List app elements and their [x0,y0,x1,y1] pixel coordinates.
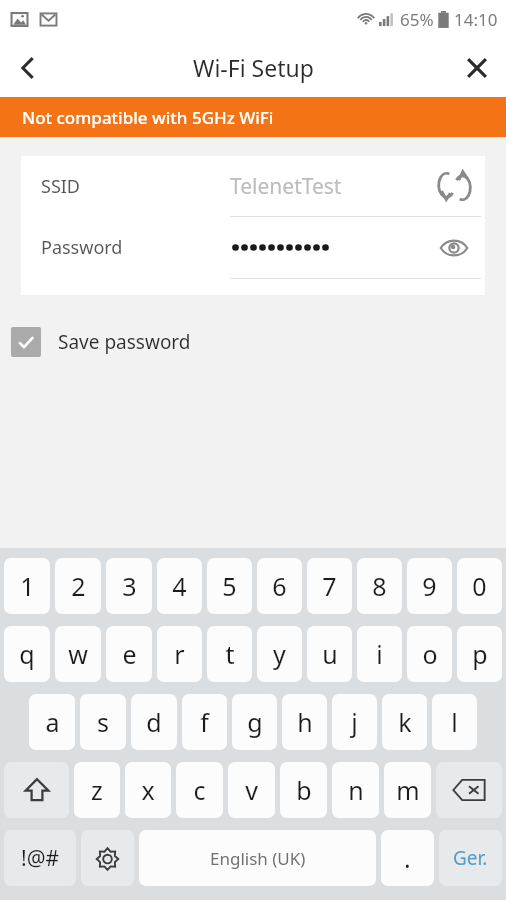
button[interactable]: u [307,626,352,682]
staticText: . [404,841,411,875]
button[interactable]: g [232,694,277,750]
button[interactable]: o [407,626,452,682]
staticText: p [472,637,488,671]
button[interactable]: b [280,762,327,818]
staticText: 14:10 [454,8,498,31]
staticText: t [225,637,235,671]
button[interactable]: . [381,830,434,886]
button[interactable]: z [74,762,120,818]
staticText: f [200,705,209,739]
staticText: TelenetTest [230,172,342,201]
staticText: n [348,773,364,807]
button[interactable]: 6 [257,558,302,614]
button[interactable]: Keyboard settings [81,830,134,886]
button[interactable]: d [131,694,177,750]
button[interactable]: Close [448,39,506,97]
button[interactable]: 2 [55,558,101,614]
button[interactable]: Show password [431,225,477,271]
staticText: m [396,773,420,807]
staticText: y [273,637,286,671]
button[interactable]: x [125,762,171,818]
staticText: Not compatible with 5GHz WiFi [22,106,274,129]
button[interactable]: Password [21,217,485,278]
staticText: s [97,705,109,739]
button[interactable]: r [157,626,202,682]
staticText: 3 [122,569,137,603]
button[interactable]: t [207,626,252,682]
staticText: 8 [372,569,387,603]
button[interactable]: Ger. [439,830,502,886]
button[interactable]: n [332,762,379,818]
button[interactable]: p [457,626,502,682]
staticText: w [68,637,88,671]
button[interactable]: !@# [4,830,76,886]
button[interactable]: Refresh networks [431,163,477,209]
button[interactable]: a [29,694,75,750]
button[interactable]: h [282,694,327,750]
button[interactable]: m [384,762,431,818]
button[interactable]: i [357,626,402,682]
button[interactable]: k [382,694,427,750]
staticText: 6 [272,569,287,603]
staticText: o [422,637,438,671]
staticText: d [146,705,162,739]
staticText: 0 [472,569,487,603]
staticText: j [351,705,358,739]
staticText: !@# [21,844,60,873]
staticText: a [45,705,60,739]
staticText: r [174,637,185,671]
staticText: l [451,705,458,739]
staticText: c [193,773,206,807]
staticText: 9 [422,569,437,603]
button[interactable]: j [332,694,377,750]
button[interactable]: v [228,762,275,818]
button[interactable]: q [4,626,50,682]
button[interactable]: l [432,694,477,750]
button[interactable]: SSID [21,156,485,216]
staticText: English (UK) [210,847,306,870]
button[interactable]: Save password [0,321,506,363]
staticText: x [141,773,155,807]
button[interactable]: 0 [457,558,502,614]
staticText: u [322,637,338,671]
staticText: e [122,637,137,671]
staticText: Save password [58,329,191,355]
staticText: v [245,773,258,807]
button[interactable]: 8 [357,558,402,614]
button[interactable]: English (UK) [139,830,376,886]
button[interactable]: y [257,626,302,682]
button[interactable]: 4 [157,558,202,614]
button[interactable]: s [80,694,126,750]
staticText: Password [41,235,123,260]
staticText: h [297,705,313,739]
staticText: 7 [322,569,337,603]
staticText: k [398,705,412,739]
button[interactable]: e [106,626,152,682]
staticText: Ger. [453,845,488,871]
button[interactable]: Shift [4,762,69,818]
button[interactable]: w [55,626,101,682]
staticText: q [19,637,35,671]
button[interactable]: 5 [207,558,252,614]
button[interactable]: Backspace [436,762,502,818]
staticText: b [296,773,312,807]
button[interactable]: 7 [307,558,352,614]
button[interactable]: c [176,762,223,818]
staticText: 5 [222,569,237,603]
button[interactable]: 9 [407,558,452,614]
staticText: 1 [20,569,35,603]
staticText: 2 [71,569,86,603]
staticText: SSID [41,174,81,199]
staticText: Wi-Fi Setup [193,52,314,83]
staticText: g [247,705,263,739]
staticText: i [376,637,383,671]
staticText: 4 [172,569,187,603]
button[interactable]: Back [0,40,56,96]
button[interactable]: 3 [106,558,152,614]
button[interactable]: 1 [4,558,50,614]
staticText: z [91,773,103,807]
staticText: 65% [400,8,434,31]
button[interactable]: f [182,694,227,750]
